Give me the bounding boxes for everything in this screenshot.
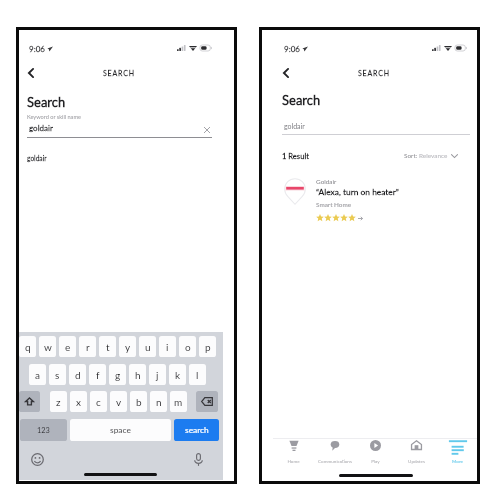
staticText: g	[115, 369, 121, 381]
staticText: SEARCH	[358, 69, 390, 77]
staticText: goldair	[29, 123, 53, 133]
button[interactable]: Home	[273, 439, 314, 464]
staticText: p	[205, 341, 211, 353]
staticText: s	[55, 369, 60, 381]
staticText: w	[44, 341, 52, 353]
staticText: y	[125, 341, 131, 353]
staticText: Home	[287, 458, 300, 464]
button[interactable]: d	[69, 364, 86, 385]
staticText: q	[25, 341, 31, 353]
staticText: e	[65, 341, 71, 353]
button[interactable]: t	[99, 336, 116, 357]
button[interactable]: Updates	[396, 439, 437, 464]
staticText: l	[196, 369, 199, 381]
staticText: Relevance	[419, 152, 448, 160]
button[interactable]: Sort:	[404, 150, 458, 162]
staticText: Updates	[408, 458, 425, 464]
staticText: 1 Result	[282, 151, 309, 160]
staticText: x	[76, 396, 81, 408]
staticText: goldair	[284, 122, 305, 130]
button[interactable]: Back	[21, 63, 40, 82]
button[interactable]: goldair	[18, 153, 223, 165]
staticText: k	[175, 369, 181, 381]
button[interactable]: z	[50, 391, 67, 412]
button[interactable]: w	[39, 336, 56, 357]
button[interactable]: g	[109, 364, 126, 385]
staticText: Smart Home	[316, 201, 352, 209]
staticText: 9:06	[284, 44, 300, 54]
staticText: goldair	[27, 154, 47, 162]
staticText: Keyword or skill name	[27, 113, 81, 120]
staticText: i	[166, 341, 169, 353]
button[interactable]: y	[119, 336, 136, 357]
staticText: Communications	[318, 458, 352, 464]
button[interactable]: Goldair	[279, 173, 469, 229]
staticText: h	[135, 369, 141, 381]
staticText: SEARCH	[103, 69, 135, 77]
button[interactable]: Clear text	[201, 124, 213, 136]
button[interactable]: r	[79, 336, 96, 357]
staticText: z	[56, 396, 61, 408]
staticText: 123	[37, 426, 50, 435]
staticText: v	[116, 396, 122, 408]
button[interactable]: s	[49, 364, 66, 385]
button[interactable]: x	[70, 391, 87, 412]
button[interactable]: Dictation	[192, 452, 204, 466]
staticText: b	[136, 396, 142, 408]
staticText: Sort:	[404, 152, 419, 160]
staticText: n	[156, 396, 162, 408]
button[interactable]: 123	[20, 419, 67, 441]
staticText: 9:06	[29, 44, 45, 54]
button[interactable]: Emoji keyboard	[30, 452, 44, 466]
staticText: More	[452, 458, 463, 464]
button[interactable]: e	[59, 336, 76, 357]
button[interactable]: v	[110, 391, 127, 412]
staticText: “Alexa, turn on heater”	[316, 187, 399, 197]
button[interactable]: p	[199, 336, 216, 357]
staticText: u	[145, 341, 151, 353]
staticText: search	[185, 425, 209, 435]
button[interactable]: Communications	[314, 439, 355, 464]
staticText: Goldair	[316, 178, 337, 186]
button[interactable]: search	[174, 419, 219, 441]
button[interactable]: j	[149, 364, 166, 385]
staticText: t	[106, 341, 110, 353]
button[interactable]	[19, 391, 40, 412]
staticText: a	[35, 369, 40, 381]
button[interactable]: b	[130, 391, 147, 412]
staticText: m	[174, 396, 183, 408]
button[interactable]: i	[159, 336, 176, 357]
staticText: space	[110, 425, 131, 435]
staticText: f	[96, 369, 100, 381]
button[interactable]: More	[437, 439, 478, 464]
button[interactable]: u	[139, 336, 156, 357]
button[interactable]: k	[169, 364, 186, 385]
staticText: d	[75, 369, 81, 381]
button[interactable]: n	[150, 391, 167, 412]
button[interactable]: h	[129, 364, 146, 385]
button[interactable]	[196, 391, 218, 412]
button[interactable]: l	[189, 364, 206, 385]
staticText: c	[96, 396, 101, 408]
staticText: o	[185, 341, 191, 353]
button[interactable]: Back	[276, 63, 295, 82]
staticText: r	[86, 341, 90, 353]
button[interactable]: f	[89, 364, 106, 385]
staticText: Play	[371, 458, 380, 464]
staticText: j	[156, 369, 159, 381]
staticText: Search	[282, 92, 321, 108]
button[interactable]: space	[70, 419, 171, 441]
staticText: Search	[27, 94, 66, 110]
button[interactable]: o	[179, 336, 196, 357]
button[interactable]: q	[19, 336, 36, 357]
button[interactable]: m	[170, 391, 187, 412]
button[interactable]: a	[29, 364, 46, 385]
button[interactable]: c	[90, 391, 107, 412]
button[interactable]: Play	[355, 439, 396, 464]
